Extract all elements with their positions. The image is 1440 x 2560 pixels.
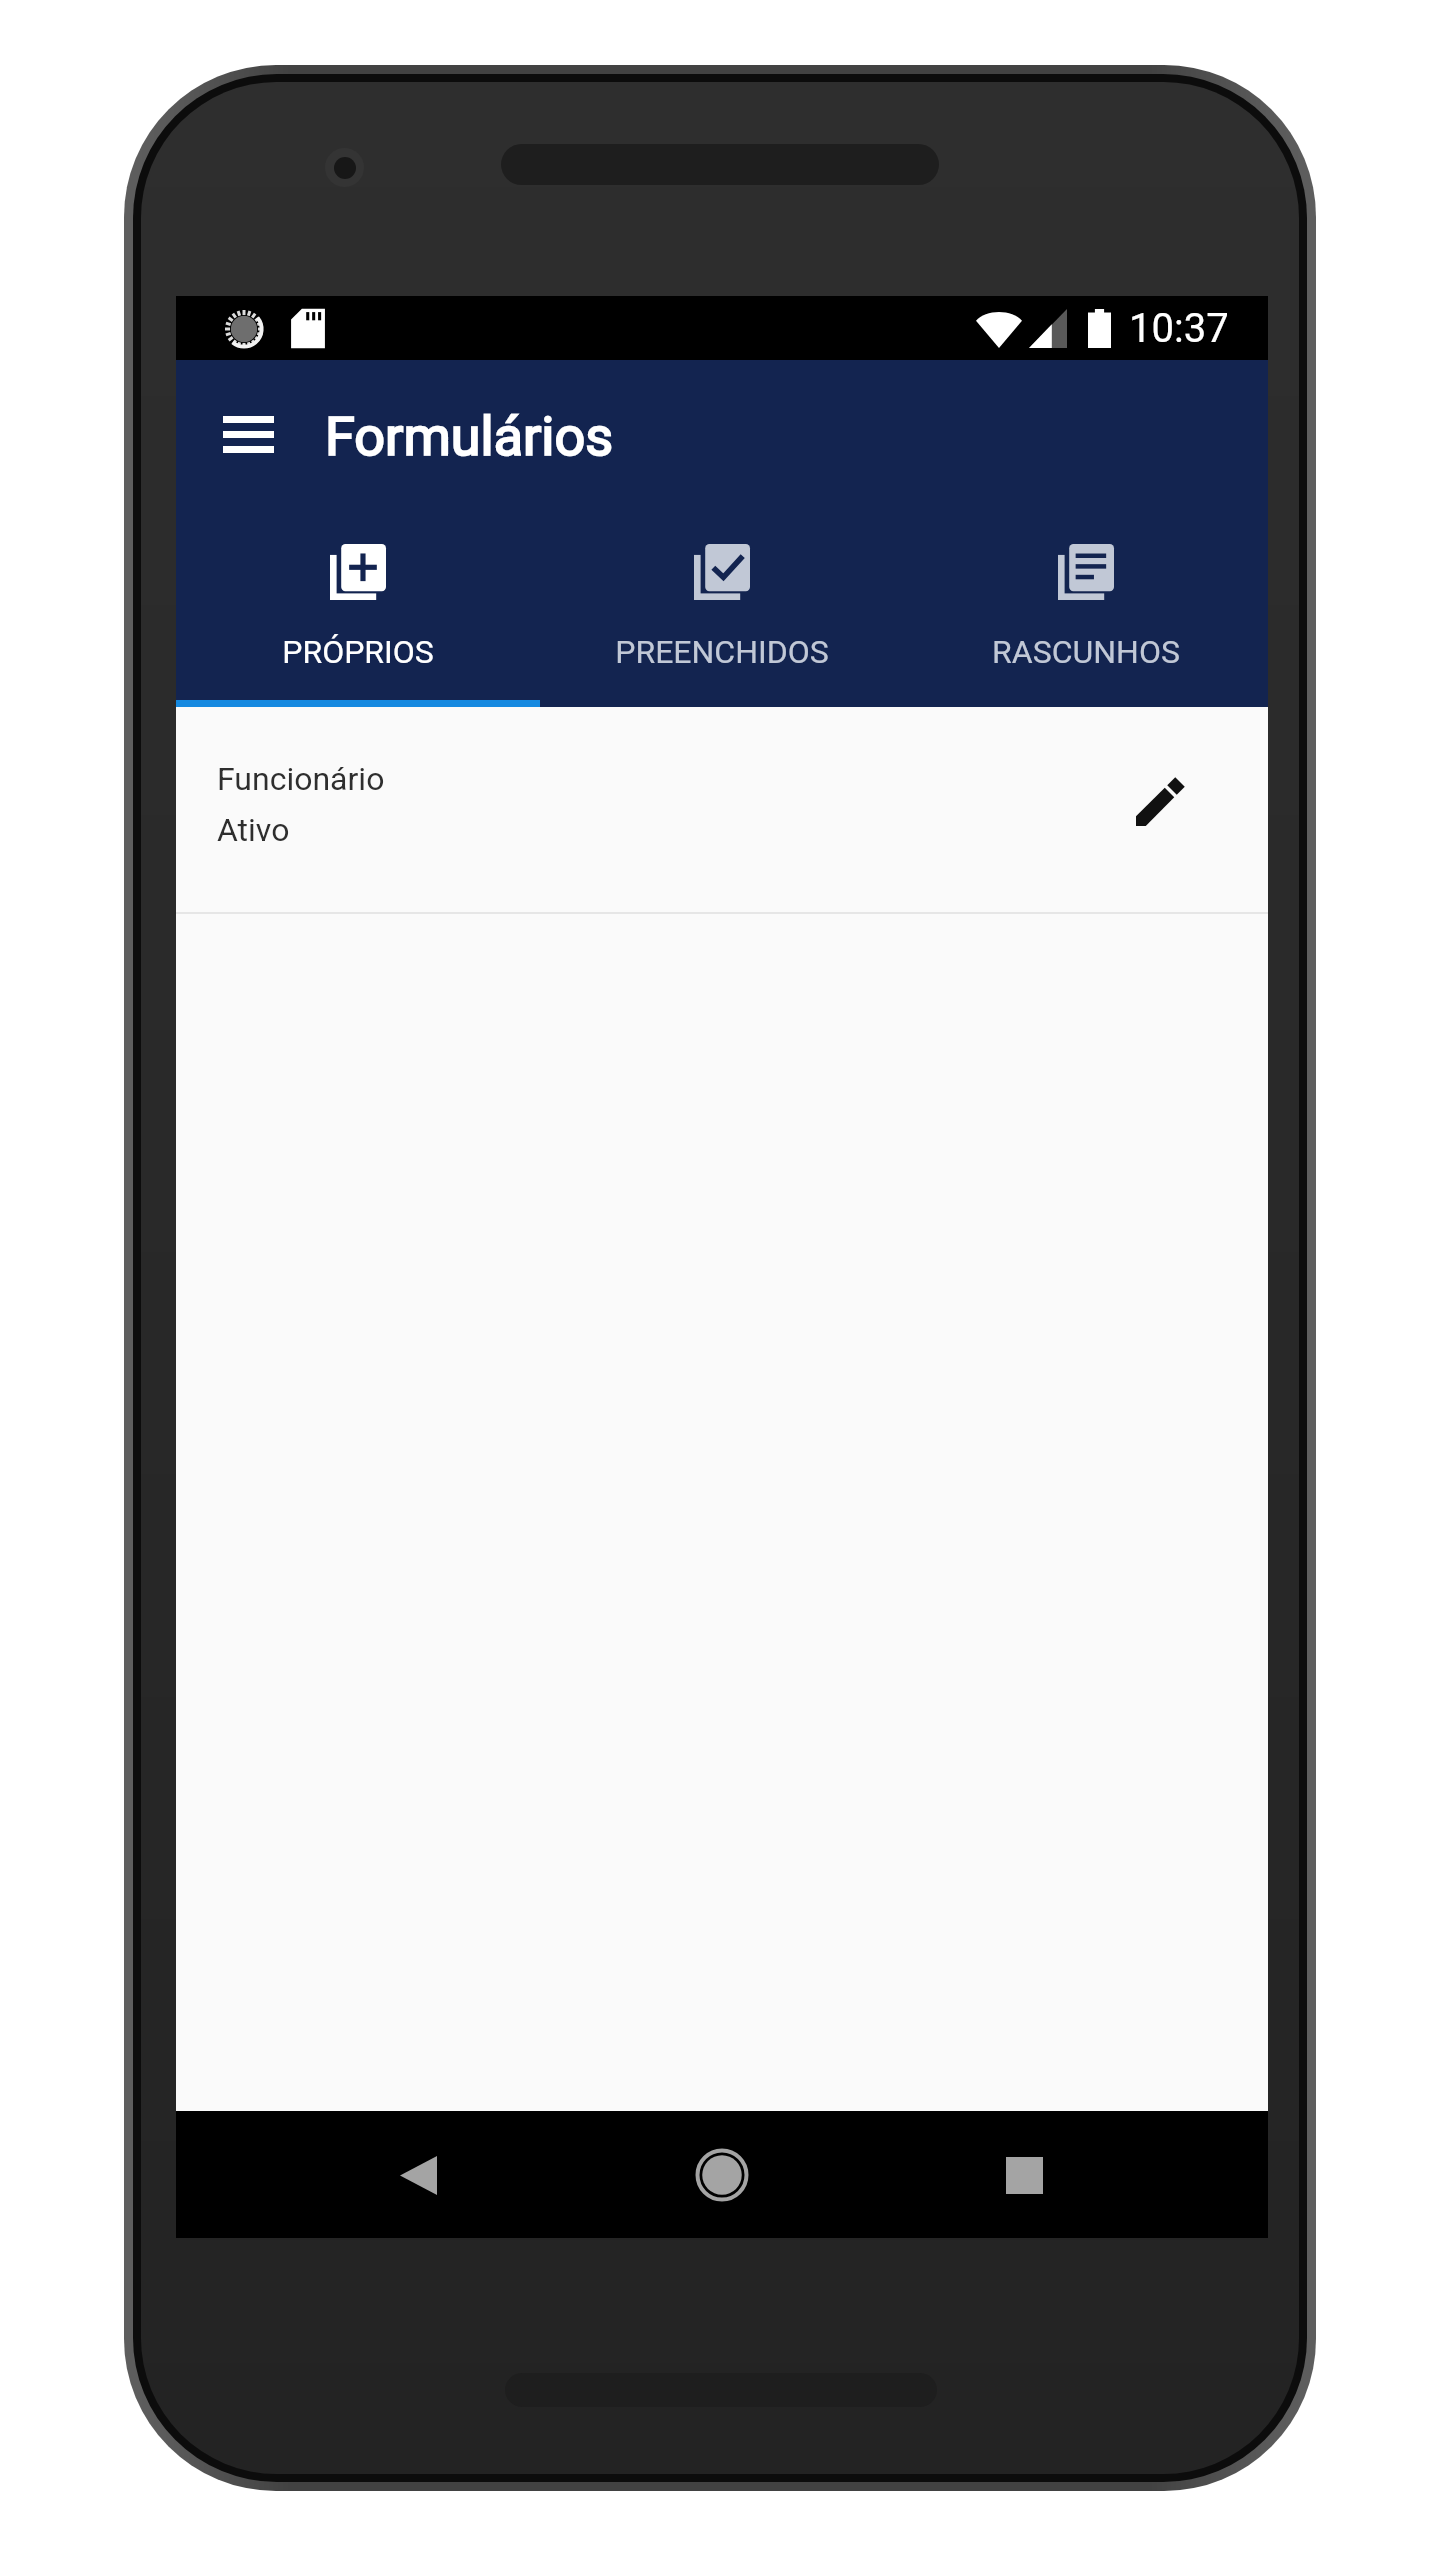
staticText: Ativo (217, 811, 290, 849)
button[interactable]: Back (362, 2119, 474, 2231)
staticText: RASCUNHOS (992, 633, 1180, 671)
staticText: PREENCHIDOS (615, 633, 829, 671)
button[interactable]: RASCUNHOS (904, 508, 1268, 707)
button[interactable]: Funcionário (176, 707, 1268, 914)
button[interactable]: PREENCHIDOS (540, 508, 904, 707)
button[interactable]: Home (666, 2119, 778, 2231)
staticText: PRÓPRIOS (282, 633, 434, 671)
staticText: 10:37 (1129, 305, 1229, 352)
button[interactable]: Edit (1117, 757, 1205, 845)
button[interactable]: Recent apps (968, 2119, 1080, 2231)
button[interactable]: Open navigation menu (200, 386, 296, 482)
staticText: Funcionário (217, 760, 385, 798)
staticText: Formulários (325, 405, 614, 468)
button[interactable]: PRÓPRIOS (176, 508, 540, 707)
